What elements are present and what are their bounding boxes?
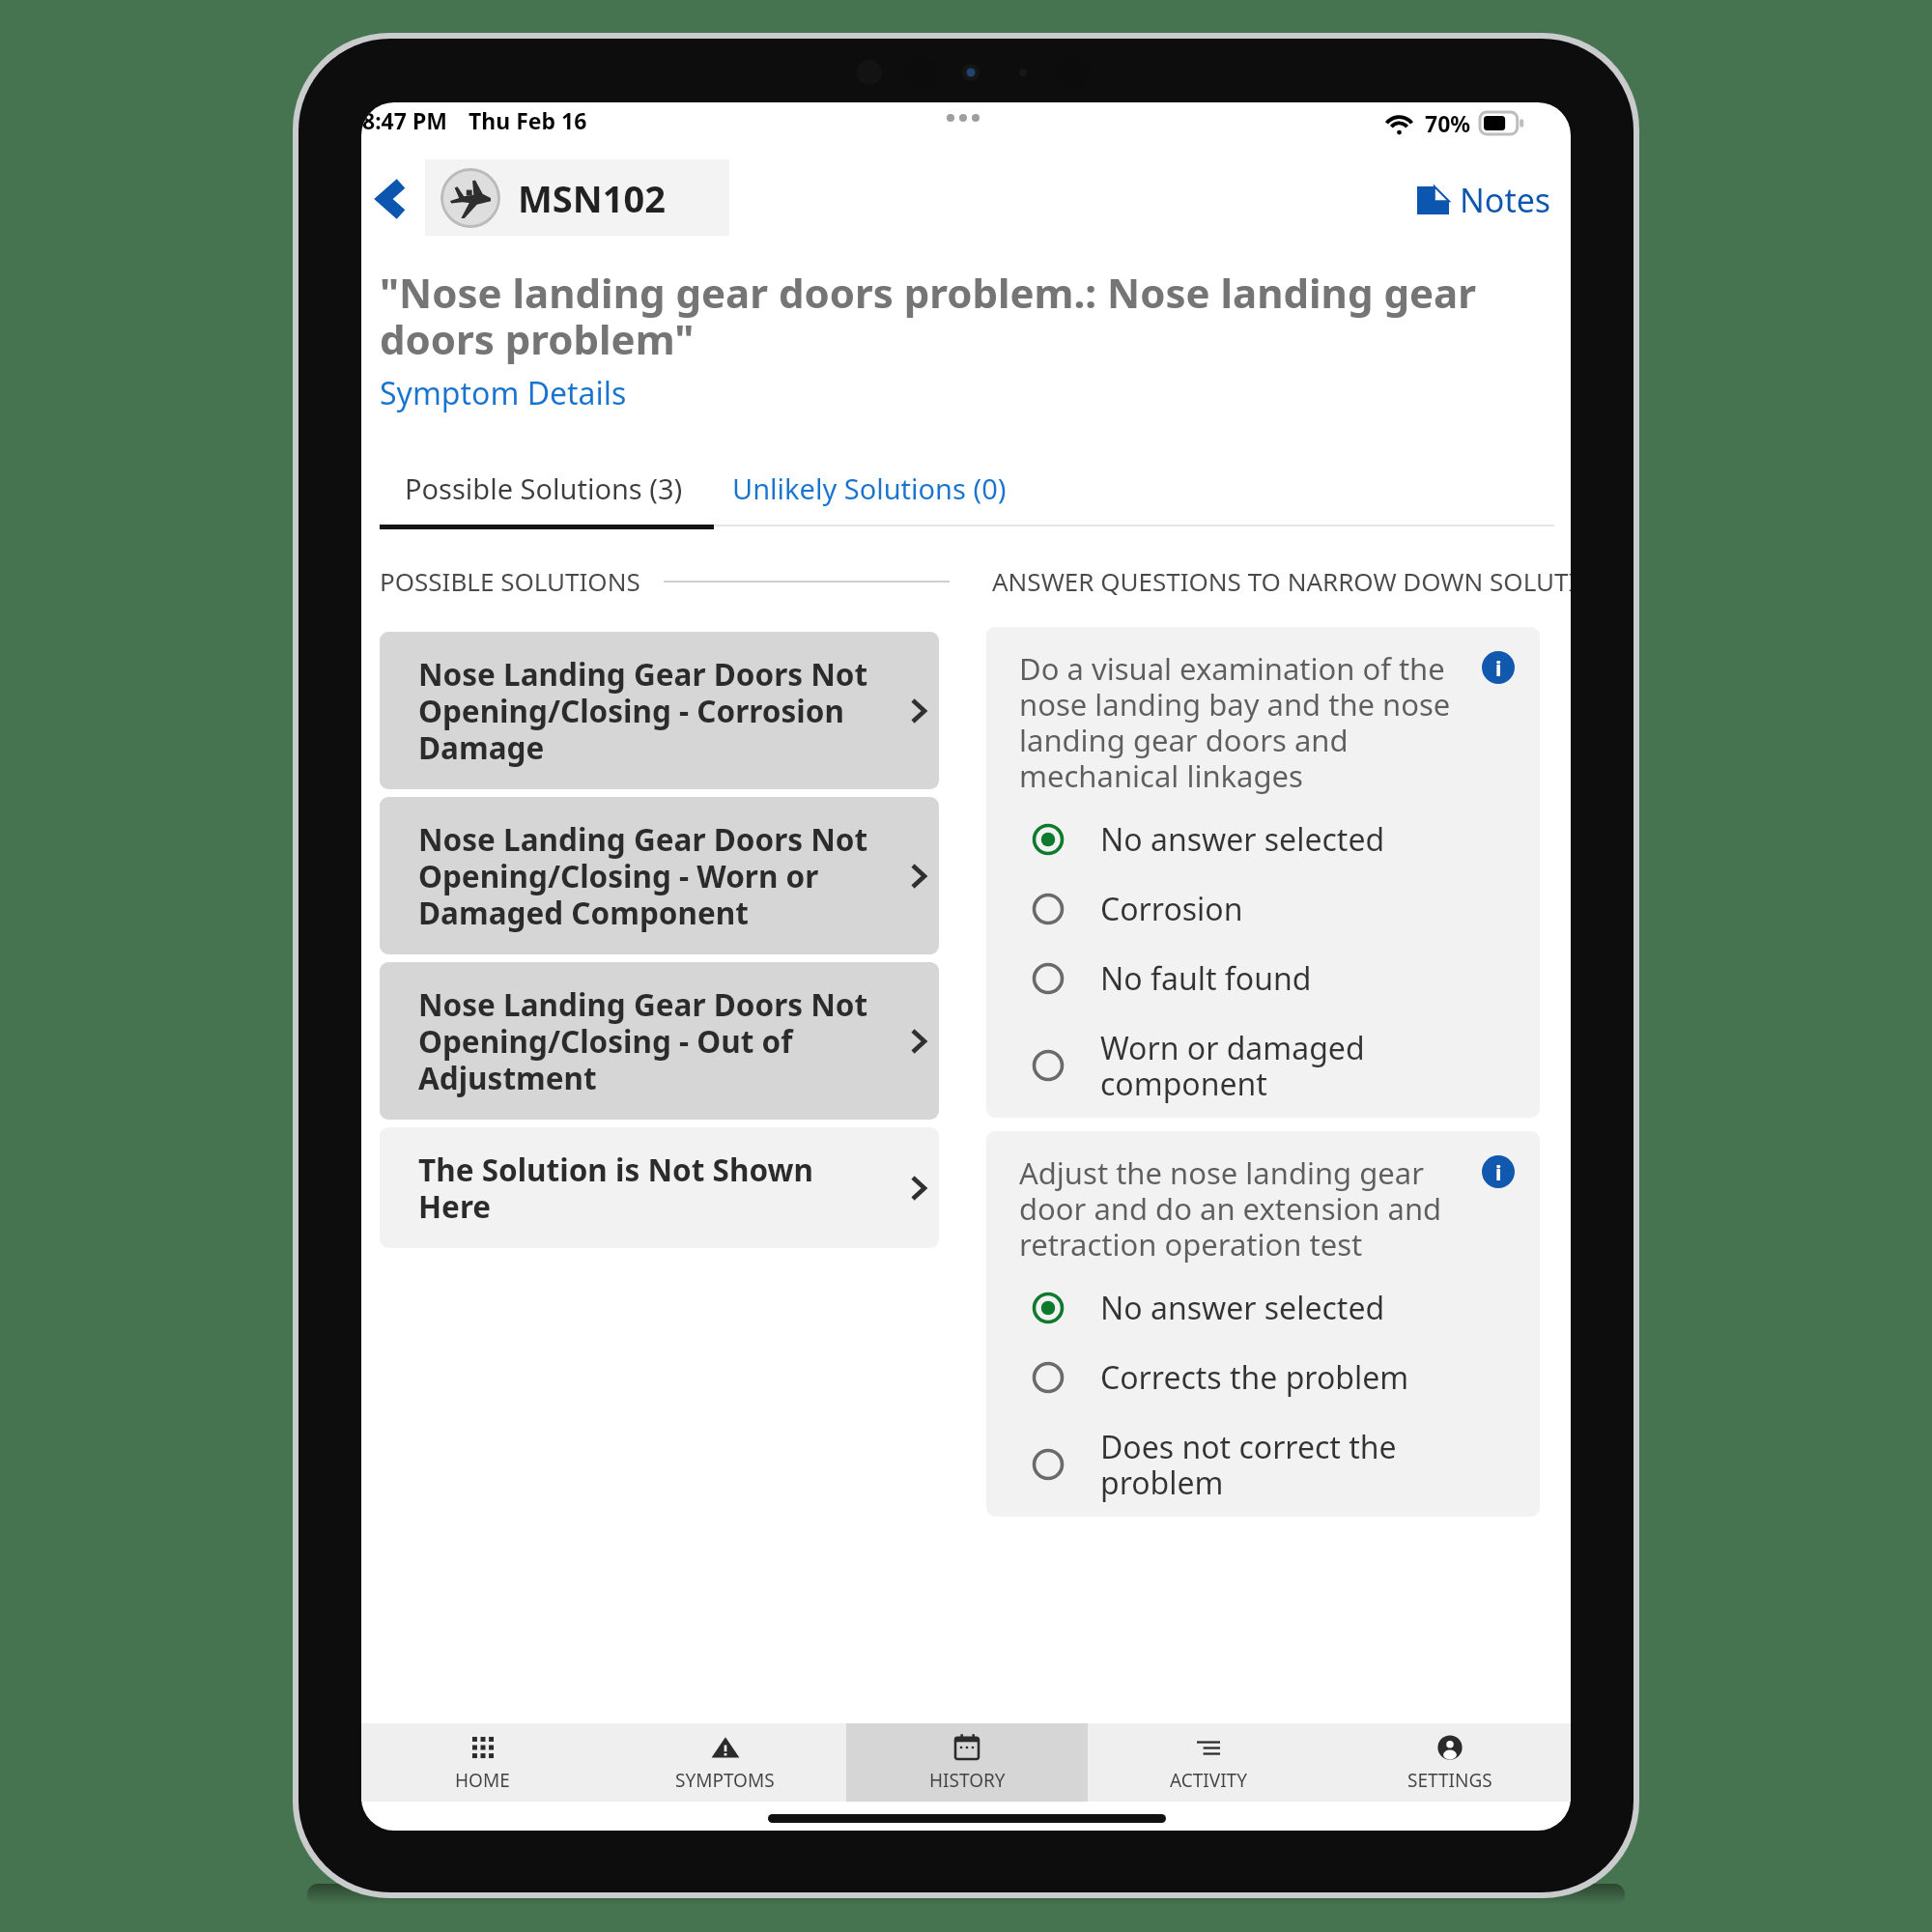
staticText: Adjust the nose landing gear door and do… bbox=[1019, 1152, 1454, 1264]
button[interactable]: Nose Landing Gear Doors Not Opening/Clos… bbox=[380, 632, 939, 789]
button[interactable]: Nose Landing Gear Doors Not Opening/Clos… bbox=[380, 797, 939, 954]
staticText: Do a visual examination of the nose land… bbox=[1019, 648, 1454, 796]
button[interactable]: SETTINGS bbox=[1329, 1723, 1571, 1802]
button[interactable]: Does not correct the problem bbox=[986, 1412, 1540, 1517]
staticText: No answer selected bbox=[1100, 1287, 1419, 1329]
staticText: No answer selected bbox=[1100, 818, 1419, 861]
staticText: Notes bbox=[1460, 178, 1551, 222]
button[interactable]: ACTIVITY bbox=[1088, 1723, 1329, 1802]
button[interactable]: No answer selected bbox=[986, 805, 1540, 874]
staticText: Nose Landing Gear Doors Not Opening/Clos… bbox=[418, 983, 880, 1098]
staticText: i bbox=[1495, 653, 1502, 682]
button[interactable]: Worn or damaged component bbox=[986, 1013, 1540, 1118]
button[interactable]: Possible Solutions (3) bbox=[380, 467, 714, 529]
button[interactable]: SYMPTOMS bbox=[604, 1723, 846, 1802]
staticText: Unlikely Solutions (0) bbox=[732, 469, 1007, 507]
staticText: The Solution is Not Shown Here bbox=[418, 1149, 880, 1227]
button[interactable]: Symptom Details bbox=[380, 372, 627, 414]
button[interactable]: Unlikely Solutions (0) bbox=[707, 467, 1032, 510]
staticText: MSN102 bbox=[518, 173, 666, 223]
staticText: ACTIVITY bbox=[1170, 1768, 1247, 1793]
staticText: Possible Solutions (3) bbox=[405, 469, 683, 507]
staticText: POSSIBLE SOLUTIONS bbox=[380, 564, 640, 598]
staticText: No fault found bbox=[1100, 957, 1419, 1000]
staticText: Does not correct the problem bbox=[1100, 1426, 1419, 1503]
button[interactable]: Corrects the problem bbox=[986, 1343, 1540, 1412]
staticText: Worn or damaged component bbox=[1100, 1027, 1419, 1104]
button[interactable]: No answer selected bbox=[986, 1273, 1540, 1343]
button[interactable]: Info bbox=[1482, 651, 1515, 684]
button[interactable]: MSN102 bbox=[425, 159, 729, 236]
staticText: i bbox=[1495, 1157, 1502, 1186]
button[interactable]: Info bbox=[1482, 1155, 1515, 1188]
staticText: Nose Landing Gear Doors Not Opening/Clos… bbox=[418, 653, 880, 768]
staticText: 70% bbox=[1425, 108, 1471, 138]
button[interactable]: The Solution is Not Shown Here bbox=[380, 1127, 939, 1248]
staticText: ANSWER QUESTIONS TO NARROW DOWN SOLUTION… bbox=[992, 564, 1571, 598]
staticText: HISTORY bbox=[929, 1768, 1006, 1793]
staticText: SYMPTOMS bbox=[675, 1768, 775, 1793]
staticText: HOME bbox=[455, 1768, 510, 1793]
staticText: Thu Feb 16 bbox=[469, 105, 587, 135]
staticText: "Nose landing gear doors problem.: Nose … bbox=[380, 265, 1486, 366]
button[interactable]: Notes bbox=[1411, 170, 1557, 230]
button[interactable]: Back bbox=[361, 166, 423, 232]
button[interactable]: HISTORY bbox=[846, 1723, 1088, 1802]
staticText: Corrosion bbox=[1100, 888, 1419, 930]
button[interactable]: Corrosion bbox=[986, 874, 1540, 944]
button[interactable]: HOME bbox=[361, 1723, 604, 1802]
button[interactable]: Nose Landing Gear Doors Not Opening/Clos… bbox=[380, 962, 939, 1120]
staticText: Nose Landing Gear Doors Not Opening/Clos… bbox=[418, 818, 880, 933]
staticText: SETTINGS bbox=[1407, 1768, 1492, 1793]
staticText: 8:47 PM bbox=[362, 105, 447, 135]
button[interactable]: No fault found bbox=[986, 944, 1540, 1013]
staticText: Corrects the problem bbox=[1100, 1356, 1419, 1399]
